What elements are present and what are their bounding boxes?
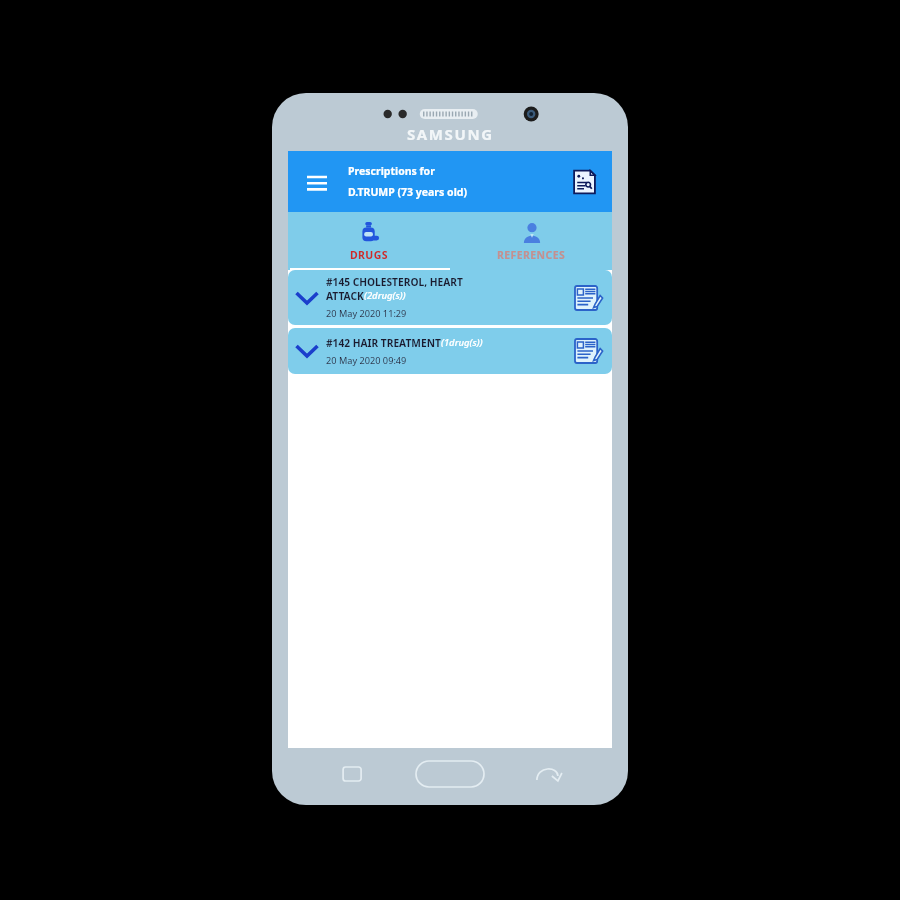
staticText: DRUGS (350, 248, 388, 262)
button[interactable]: DRUGS (288, 212, 450, 270)
button[interactable]: REFERENCES (450, 212, 612, 270)
staticText: REFERENCES (497, 248, 566, 262)
staticText: #142 HAIR TREATMENT (326, 336, 441, 350)
button[interactable]: Edit prescription (570, 281, 604, 315)
staticText: Prescriptions for (348, 164, 435, 178)
staticText: 20 May 2020 09:49 (326, 354, 407, 367)
button[interactable]: Open navigation menu (300, 165, 334, 199)
button[interactable]: Edit prescription (570, 334, 604, 368)
button[interactable]: #142 HAIR TREATMENT (288, 328, 612, 374)
staticText: ATTACK (326, 289, 364, 303)
staticText: SAMSUNG (407, 124, 494, 144)
staticText: D.TRUMP (73 years old) (348, 185, 467, 199)
button[interactable]: #145 CHOLESTEROL, HEART (288, 270, 612, 325)
staticText: #145 CHOLESTEROL, HEART (326, 275, 463, 289)
button[interactable]: Prescription document (567, 165, 601, 199)
staticText: 20 May 2020 11:29 (326, 307, 407, 320)
staticText: (1drug(s)) (441, 336, 483, 349)
staticText: (2drug(s)) (364, 289, 406, 302)
